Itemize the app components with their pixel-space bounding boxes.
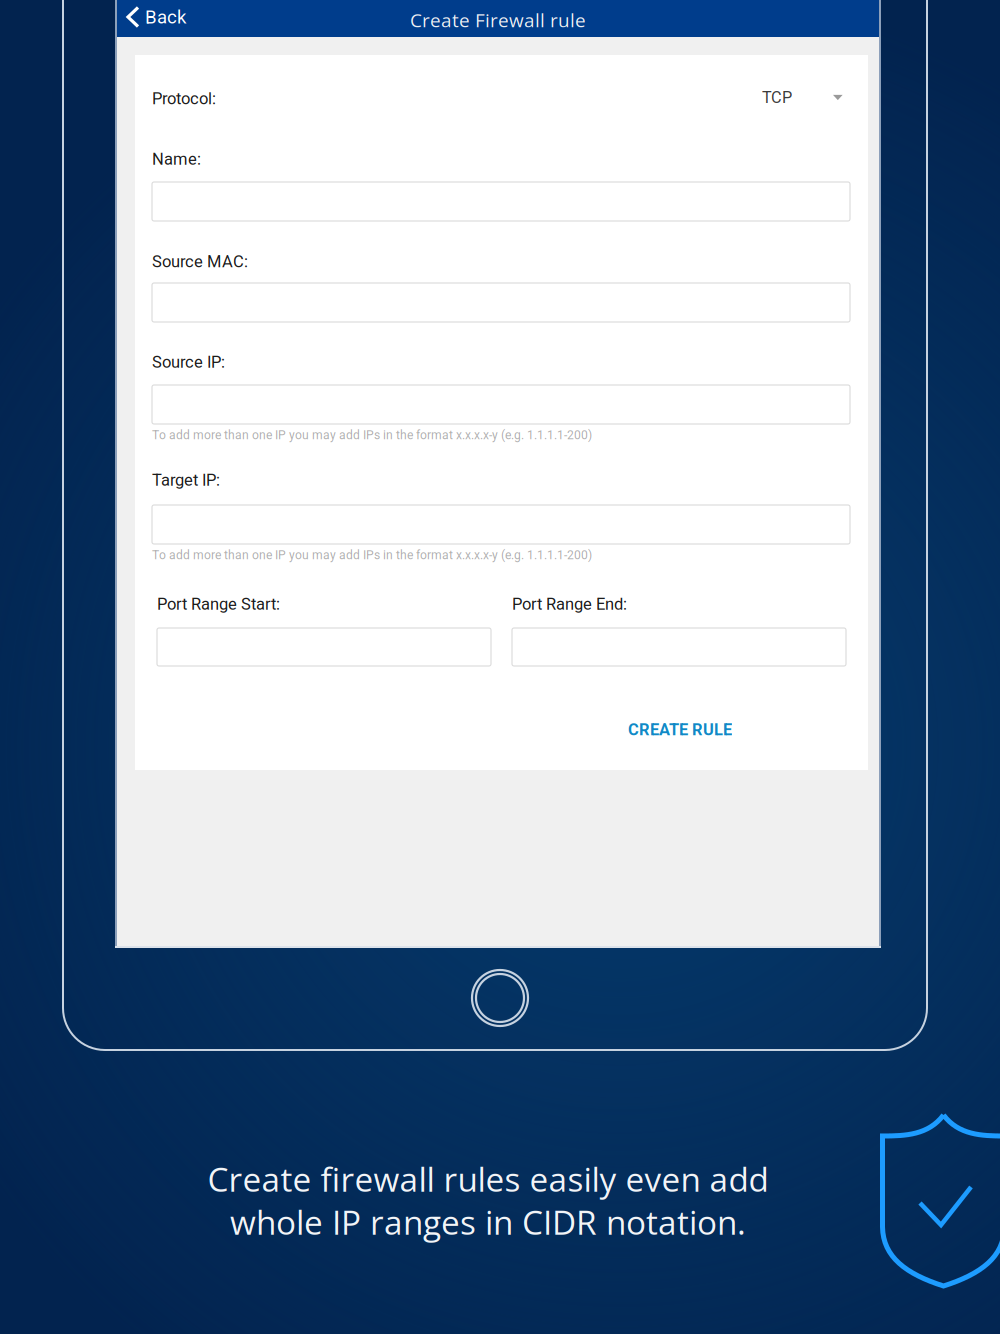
button[interactable]: CREATE RULE <box>618 711 742 748</box>
staticText: Port Range End: <box>512 594 627 614</box>
staticText: Create Firewall rule <box>410 7 586 33</box>
staticText: Source MAC: <box>152 252 248 271</box>
staticText: Protocol: <box>152 89 216 108</box>
staticText: Source IP: <box>152 352 225 372</box>
staticText: Back <box>145 6 186 28</box>
staticText: Name: <box>152 149 201 169</box>
staticText: Target IP: <box>152 470 220 490</box>
button[interactable]: Back <box>117 0 196 37</box>
staticText: TCP <box>762 88 792 107</box>
staticText: CREATE RULE <box>628 720 732 739</box>
staticText: To add more than one IP you may add IPs … <box>152 428 592 442</box>
staticText: Create firewall rules easily even add <box>207 1156 768 1201</box>
button[interactable]: TCP <box>754 83 851 111</box>
staticText: whole IP ranges in CIDR notation. <box>230 1199 746 1244</box>
staticText: To add more than one IP you may add IPs … <box>152 548 592 562</box>
staticText: Port Range Start: <box>157 594 280 614</box>
